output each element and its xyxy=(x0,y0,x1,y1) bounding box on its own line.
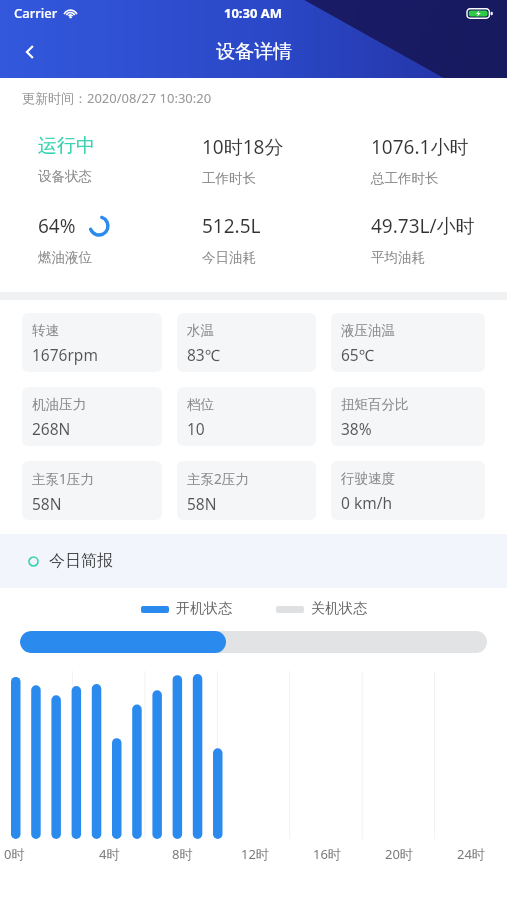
staticText: 49.73L/小时 xyxy=(371,213,475,239)
staticText: Carrier xyxy=(14,4,58,22)
staticText: 扭矩百分比 xyxy=(341,396,409,413)
staticText: 主泵1压力 xyxy=(32,470,94,488)
staticText: 16时 xyxy=(313,845,341,863)
staticText: 关机状态 xyxy=(311,600,367,618)
button[interactable]: 主泵2压力 xyxy=(177,461,316,520)
staticText: 主泵2压力 xyxy=(187,470,249,488)
staticText: 0 km/h xyxy=(341,492,393,513)
staticText: 1076.1小时 xyxy=(371,134,469,160)
staticText: 设备详情 xyxy=(216,40,292,64)
staticText: 今日简报 xyxy=(49,551,113,571)
staticText: 平均油耗 xyxy=(371,249,425,266)
staticText: 20时 xyxy=(385,845,413,863)
button[interactable]: 水温 xyxy=(177,313,316,372)
staticText: 4时 xyxy=(99,845,120,863)
staticText: 24时 xyxy=(457,845,485,863)
staticText: 512.5L xyxy=(202,213,261,239)
staticText: 工作时长 xyxy=(202,170,256,187)
button[interactable] xyxy=(20,631,487,653)
staticText: 水温 xyxy=(187,322,214,339)
staticText: 更新时间： xyxy=(22,90,87,106)
staticText: 10时18分 xyxy=(202,134,284,160)
staticText: 10 xyxy=(187,418,205,439)
button[interactable]: 液压油温 xyxy=(331,313,485,372)
staticText: 设备状态 xyxy=(38,168,92,185)
staticText: 运行中 xyxy=(38,134,95,158)
button[interactable]: 49.73L/小时 xyxy=(338,213,507,266)
staticText: 38% xyxy=(341,418,372,439)
staticText: 64% xyxy=(38,213,76,239)
staticText: 1676rpm xyxy=(32,344,98,365)
staticText: 58N xyxy=(187,493,217,514)
staticText: 12时 xyxy=(241,845,269,863)
staticText: 液压油温 xyxy=(341,322,395,339)
button[interactable]: 64% xyxy=(0,213,169,266)
button[interactable]: 运行中 xyxy=(0,134,169,185)
button[interactable]: 转速 xyxy=(22,313,162,372)
staticText: 10:30 AM xyxy=(224,4,283,22)
staticText: 268N xyxy=(32,418,71,439)
button[interactable]: 扭矩百分比 xyxy=(331,387,485,446)
staticText: 开机状态 xyxy=(176,600,232,618)
button[interactable]: 档位 xyxy=(177,387,316,446)
button[interactable]: 开机状态 xyxy=(141,600,232,618)
staticText: 机油压力 xyxy=(32,396,86,413)
staticText: 83℃ xyxy=(187,344,221,365)
button[interactable]: 1076.1小时 xyxy=(338,134,507,187)
staticText: 65℃ xyxy=(341,344,375,365)
staticText: 转速 xyxy=(32,322,59,339)
staticText: 2020/08/27 10:30:20 xyxy=(87,89,212,107)
button[interactable]: 10时18分 xyxy=(169,134,338,187)
button[interactable]: 机油压力 xyxy=(22,387,162,446)
staticText: 燃油液位 xyxy=(38,249,92,266)
button[interactable]: 主泵1压力 xyxy=(22,461,162,520)
button[interactable]: 关机状态 xyxy=(276,600,367,618)
button[interactable]: 512.5L xyxy=(169,213,338,266)
button[interactable]: Back xyxy=(8,30,52,74)
staticText: 8时 xyxy=(172,845,193,863)
staticText: 今日油耗 xyxy=(202,249,256,266)
staticText: 档位 xyxy=(187,396,214,413)
staticText: 58N xyxy=(32,493,62,514)
staticText: 0时 xyxy=(4,845,25,863)
button[interactable]: 行驶速度 xyxy=(331,461,485,520)
staticText: 行驶速度 xyxy=(341,470,395,487)
staticText: 总工作时长 xyxy=(371,170,439,187)
